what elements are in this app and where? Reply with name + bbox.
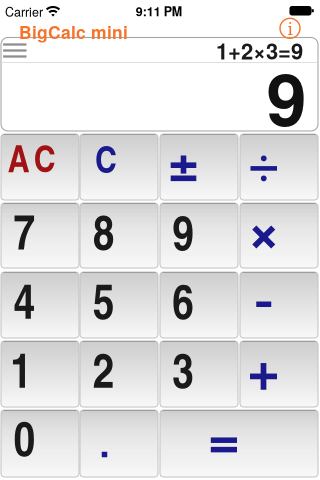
- staticText: 2: [93, 335, 115, 402]
- button[interactable]: Decimal Point: [80, 410, 158, 477]
- staticText: 9:11 PM: [136, 2, 182, 20]
- button[interactable]: All Clear: [1, 134, 79, 200]
- button[interactable]: 4: [1, 272, 79, 338]
- button[interactable]: Minus: [240, 272, 318, 338]
- staticText: 6: [172, 266, 194, 333]
- staticText: 3: [172, 335, 194, 402]
- staticText: BigCalc mini: [19, 19, 128, 44]
- staticText: 8: [93, 197, 115, 264]
- button[interactable]: 3: [160, 341, 238, 407]
- staticText: 9: [266, 45, 306, 148]
- staticText: 7: [14, 197, 36, 264]
- button[interactable]: 5: [80, 272, 158, 338]
- button[interactable]: Plus Minus: [160, 134, 238, 200]
- button[interactable]: Plus: [240, 341, 318, 407]
- button[interactable]: 1: [1, 341, 79, 407]
- staticText: 0: [14, 403, 36, 470]
- button[interactable]: Multiply: [240, 203, 318, 268]
- button[interactable]: Clear: [80, 134, 158, 200]
- button[interactable]: Menu: [1, 40, 28, 60]
- button[interactable]: 2: [80, 341, 158, 407]
- button[interactable]: Equals: [160, 410, 318, 477]
- staticText: i: [287, 17, 292, 40]
- staticText: 5: [93, 266, 115, 333]
- button[interactable]: 9: [160, 203, 238, 268]
- button[interactable]: 6: [160, 272, 238, 338]
- staticText: C: [95, 132, 117, 184]
- staticText: Carrier: [5, 2, 43, 20]
- button[interactable]: 0: [1, 410, 79, 477]
- staticText: 1+2×3=9: [216, 35, 303, 66]
- staticText: AC: [8, 131, 56, 183]
- staticText: 4: [14, 266, 36, 333]
- button[interactable]: 8: [80, 203, 158, 268]
- button[interactable]: Divide: [240, 134, 318, 200]
- button[interactable]: Info: [279, 17, 301, 39]
- staticText: 9: [172, 197, 194, 265]
- staticText: 1: [10, 335, 32, 402]
- button[interactable]: 7: [1, 203, 79, 268]
